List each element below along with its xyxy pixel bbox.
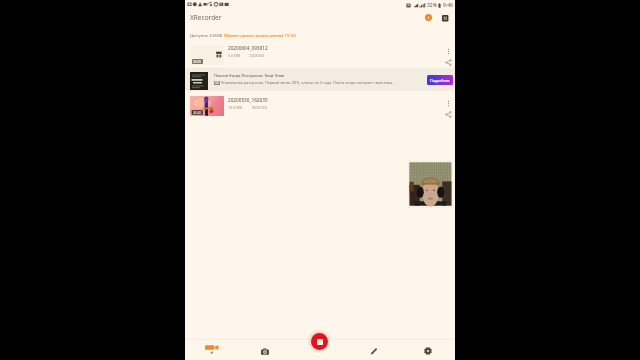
staticText: Доступно 3.06GB <box>190 33 224 38</box>
button[interactable]: Gallery <box>438 11 451 24</box>
staticText: 32% <box>427 2 437 9</box>
button[interactable]: Notifications <box>422 11 435 24</box>
staticText: Подробнее <box>430 78 450 83</box>
staticText: Плагин Когда Построены Твой Этаж <box>214 73 285 78</box>
button[interactable]: Stop recording <box>311 333 328 350</box>
staticText: 00:20 <box>193 111 202 115</box>
staticText: 5.0 MB <box>228 53 240 58</box>
button[interactable]: Share <box>443 57 454 68</box>
button[interactable]: More options <box>443 46 454 57</box>
button[interactable]: 00:20 <box>185 96 455 120</box>
button[interactable]: Settings <box>420 344 436 357</box>
button[interactable]: 00:09 <box>185 44 455 68</box>
staticText: AD <box>215 81 219 85</box>
staticText: i <box>428 15 430 21</box>
button[interactable]: Подробнее <box>427 75 453 85</box>
staticText: 20200530_162635 <box>228 97 268 103</box>
button[interactable]: Share <box>443 109 454 120</box>
staticText: 10.8 MB <box>228 105 243 110</box>
staticText: 00:09 <box>193 60 202 64</box>
staticText: 20200604_093812 <box>228 45 268 51</box>
button[interactable]: Recordings <box>204 343 220 356</box>
button[interactable]: Плагин Когда Построены Твой Этаж <box>185 68 455 91</box>
staticText: (Можно сделать запись длиной 19:10) <box>224 33 296 38</box>
button[interactable]: Edit <box>366 344 382 357</box>
staticText: 720X540 <box>249 53 264 58</box>
staticText: XRecorder <box>190 13 222 22</box>
staticText: 960X720 <box>252 105 267 110</box>
button[interactable]: Screenshot <box>257 345 273 358</box>
staticText: Уникальная рассрочка. Первый взнос 20%, … <box>221 80 394 85</box>
button[interactable]: More options <box>443 98 454 109</box>
staticText: 9:46 <box>443 2 453 9</box>
